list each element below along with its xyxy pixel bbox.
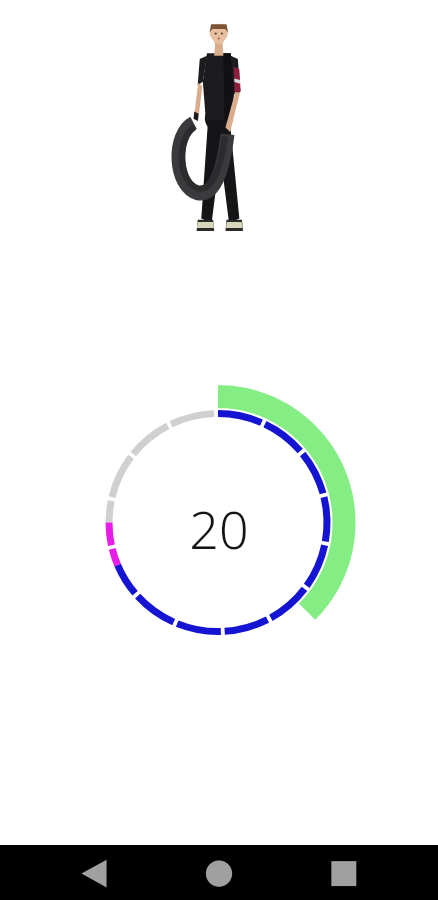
staticText: 20 [189,493,249,564]
button[interactable]: Home [192,845,247,900]
button[interactable]: Back [68,845,123,900]
button[interactable]: 20 [0,245,438,845]
button[interactable]: Recent apps [316,845,371,900]
